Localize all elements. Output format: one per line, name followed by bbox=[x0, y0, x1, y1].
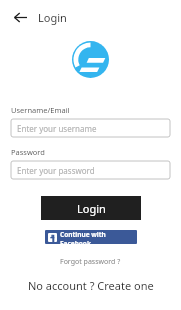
staticText: Login bbox=[38, 10, 67, 25]
staticText: Continue with Facebook bbox=[60, 230, 137, 244]
button[interactable]: Login bbox=[41, 196, 141, 220]
staticText: Enter your password bbox=[17, 165, 95, 176]
staticText: No account ? Create one bbox=[28, 278, 154, 293]
button[interactable]: No account ? Create one bbox=[22, 276, 160, 295]
button[interactable]: Enter your password bbox=[11, 161, 170, 179]
button[interactable]: Back bbox=[11, 8, 29, 26]
staticText: Login bbox=[77, 201, 106, 216]
staticText: Enter your username bbox=[17, 123, 97, 134]
button[interactable]: Enter your username bbox=[11, 119, 170, 137]
button[interactable]: Forgot password ? bbox=[54, 255, 127, 269]
staticText: Username/Email bbox=[11, 105, 70, 115]
staticText: Password bbox=[11, 147, 45, 157]
staticText: Forgot password ? bbox=[60, 257, 121, 267]
button[interactable]: Continue with Facebook bbox=[45, 230, 137, 244]
